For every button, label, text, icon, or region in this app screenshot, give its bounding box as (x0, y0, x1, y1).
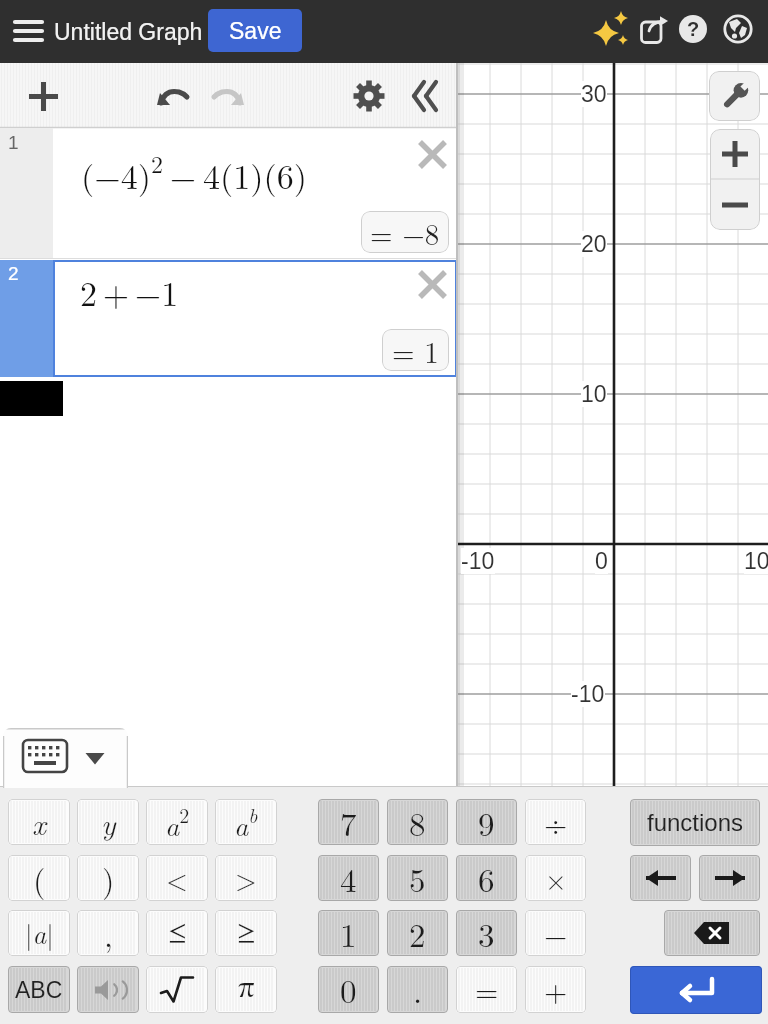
button[interactable] (405, 78, 439, 114)
button[interactable]: < (146, 855, 208, 901)
button[interactable]: ? (679, 15, 707, 43)
staticText: 20 (581, 231, 607, 257)
button[interactable]: 1 (0, 128, 53, 259)
button[interactable]: ≥ (215, 910, 277, 956)
staticText: y (101, 801, 116, 843)
button[interactable] (630, 966, 762, 1014)
button[interactable]: 0 (318, 966, 379, 1013)
button[interactable] (709, 71, 760, 121)
staticText: -10 (571, 681, 605, 707)
button[interactable] (351, 78, 387, 114)
staticText: − (544, 912, 568, 955)
button[interactable] (412, 264, 452, 304)
button[interactable] (77, 966, 139, 1013)
button[interactable] (210, 79, 246, 113)
button[interactable]: 6 (456, 855, 517, 901)
button[interactable]: ) (77, 855, 139, 901)
staticText: ( (33, 856, 46, 901)
staticText: ≥ (237, 920, 256, 946)
staticText: 1 (340, 910, 357, 956)
staticText: x (32, 801, 46, 843)
button[interactable]: = 1 (382, 329, 449, 371)
staticText: 2 (409, 910, 426, 956)
staticText: 1 (8, 132, 19, 153)
staticText: 8 (409, 799, 426, 845)
button[interactable]: , (77, 910, 139, 956)
button[interactable] (155, 79, 191, 113)
button[interactable]: × (525, 855, 586, 901)
button[interactable] (593, 11, 629, 49)
button[interactable] (3, 728, 128, 788)
button[interactable]: 7 (318, 799, 379, 845)
staticText: -10 (461, 548, 495, 574)
button[interactable]: ÷ (525, 799, 586, 845)
staticText: 5 (409, 855, 426, 901)
button[interactable]: ( (8, 855, 70, 901)
staticText: (−4)2 − 4(1)(6) (81, 146, 307, 199)
button[interactable] (53, 260, 457, 377)
button[interactable]: . (387, 966, 448, 1013)
staticText: Save (229, 18, 282, 44)
staticText: functions (647, 809, 744, 836)
button[interactable]: Save (208, 9, 302, 52)
staticText: 0 (595, 548, 608, 574)
button[interactable] (699, 855, 760, 901)
button[interactable]: ABC (8, 966, 70, 1013)
staticText: ab (234, 800, 258, 844)
button[interactable]: 2 (0, 260, 53, 377)
staticText: Untitled Graph (54, 19, 203, 45)
button[interactable]: 1 (318, 910, 379, 956)
button[interactable] (710, 180, 760, 230)
button[interactable] (8, 10, 48, 52)
button[interactable]: 5 (387, 855, 448, 901)
staticText: + (544, 968, 568, 1011)
staticText: > (235, 858, 257, 898)
button[interactable]: 9 (456, 799, 517, 845)
staticText: ) (102, 856, 115, 901)
button[interactable]: x (8, 799, 70, 845)
button[interactable] (723, 14, 753, 44)
button[interactable]: 8 (387, 799, 448, 845)
button[interactable]: − (525, 910, 586, 956)
button[interactable]: y (77, 799, 139, 845)
button[interactable]: = −8 (361, 211, 449, 253)
button[interactable] (412, 134, 452, 174)
staticText: ÷ (544, 801, 568, 844)
staticText: 2 + −1 (80, 268, 179, 316)
staticText: 30 (581, 81, 607, 107)
staticText: 7 (340, 799, 357, 845)
button[interactable]: 2 (387, 910, 448, 956)
staticText: 2 (8, 263, 19, 284)
staticText: 9 (478, 799, 495, 845)
staticText: = 1 (392, 330, 439, 371)
staticText: , (104, 911, 113, 956)
button[interactable]: 4 (318, 855, 379, 901)
staticText: ABC (15, 977, 63, 1003)
button[interactable]: > (215, 855, 277, 901)
staticText: π (238, 976, 255, 1004)
button[interactable]: |a| (8, 910, 70, 956)
button[interactable]: ≤ (146, 910, 208, 956)
button[interactable]: functions (630, 799, 760, 846)
button[interactable] (146, 966, 208, 1013)
button[interactable] (26, 79, 60, 113)
staticText: . (413, 966, 423, 1013)
button[interactable] (640, 15, 669, 44)
staticText: ≤ (168, 920, 187, 946)
staticText: 0 (340, 966, 357, 1013)
button[interactable] (664, 910, 760, 956)
staticText: < (166, 858, 188, 898)
button[interactable]: + (525, 966, 586, 1013)
button[interactable]: π (215, 966, 277, 1013)
staticText: |a| (25, 914, 54, 952)
button[interactable] (710, 129, 760, 179)
staticText: = −8 (370, 212, 440, 253)
staticText: a2 (165, 800, 190, 844)
button[interactable]: 3 (456, 910, 517, 956)
button[interactable]: a2 (146, 799, 208, 845)
button[interactable]: ab (215, 799, 277, 845)
button[interactable] (630, 855, 691, 901)
staticText: 4 (340, 855, 357, 901)
staticText: 3 (478, 910, 495, 956)
button[interactable]: = (456, 966, 517, 1013)
